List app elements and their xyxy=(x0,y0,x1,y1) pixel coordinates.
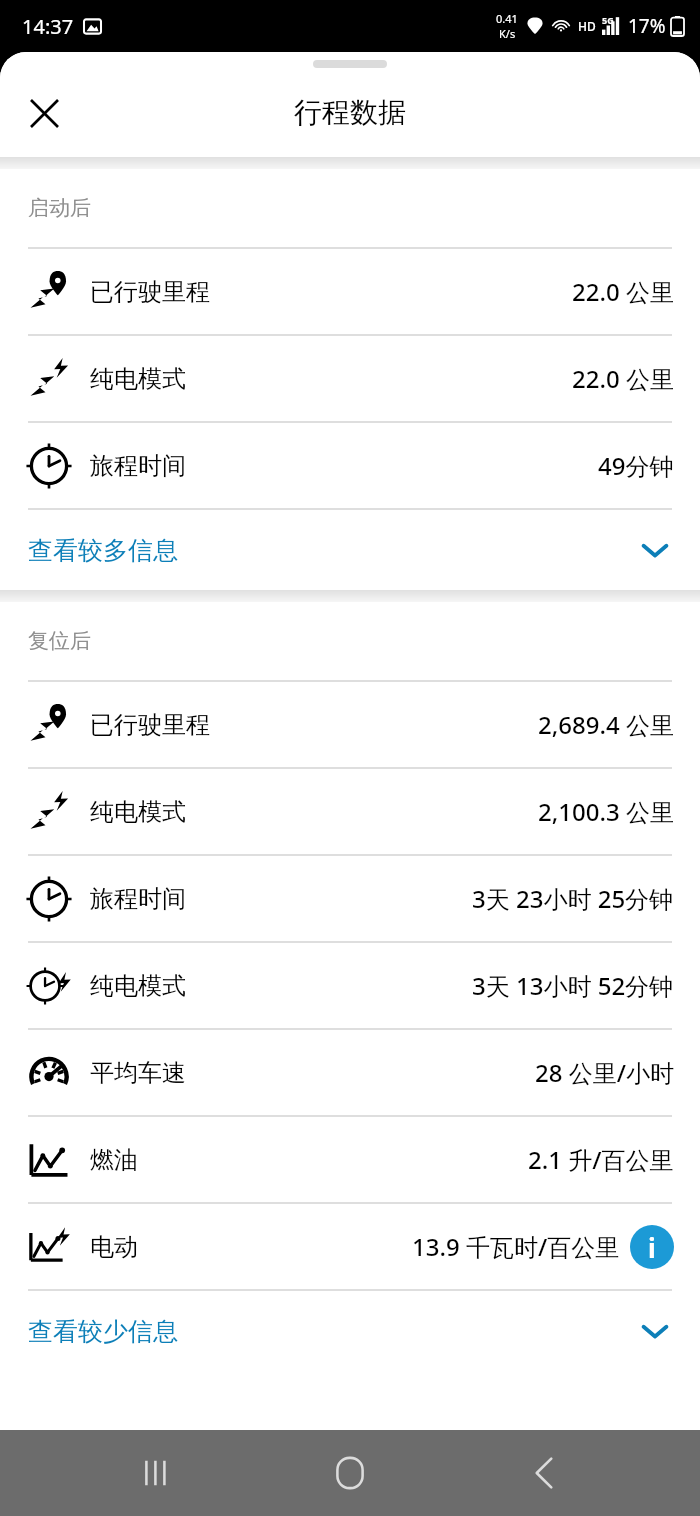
button[interactable]: Back xyxy=(506,1435,582,1511)
button[interactable]: 已行驶里程 xyxy=(0,249,700,334)
staticText: 旅程时间 xyxy=(90,451,186,481)
staticText: 纯电模式 xyxy=(90,971,186,1001)
button[interactable]: 查看较多信息 xyxy=(0,510,700,590)
staticText: HD xyxy=(578,18,596,34)
button[interactable]: 纯电模式 xyxy=(0,943,700,1028)
staticText: 查看较少信息 xyxy=(28,1316,178,1347)
staticText: 平均车速 xyxy=(90,1058,186,1088)
staticText: K/s xyxy=(499,26,516,41)
button[interactable]: Info xyxy=(630,1225,674,1269)
staticText: 复位后 xyxy=(28,628,91,654)
staticText: 启动后 xyxy=(28,195,91,221)
staticText: 2,100.3 公里 xyxy=(538,795,674,828)
staticText: 22.0 公里 xyxy=(572,362,674,395)
staticText: 纯电模式 xyxy=(90,364,186,394)
button[interactable]: Home xyxy=(312,1435,388,1511)
staticText: 5G xyxy=(602,14,614,26)
button[interactable]: 燃油 xyxy=(0,1117,700,1202)
button[interactable]: 旅程时间 xyxy=(0,856,700,941)
staticText: 已行驶里程 xyxy=(90,277,210,307)
button[interactable]: 电动 xyxy=(0,1204,700,1289)
staticText: 纯电模式 xyxy=(90,797,186,827)
staticText: 查看较多信息 xyxy=(28,535,178,566)
button[interactable]: 纯电模式 xyxy=(0,336,700,421)
staticText: 2,689.4 公里 xyxy=(538,708,674,741)
staticText: 28 公里/小时 xyxy=(535,1056,674,1089)
staticText: 0.41 xyxy=(496,11,518,26)
button[interactable]: 已行驶里程 xyxy=(0,682,700,767)
staticText: 已行驶里程 xyxy=(90,710,210,740)
staticText: 行程数据 xyxy=(294,95,406,130)
staticText: 电动 xyxy=(90,1232,138,1262)
button[interactable]: Close xyxy=(18,87,70,139)
staticText: 旅程时间 xyxy=(90,884,186,914)
staticText: 燃油 xyxy=(90,1145,138,1175)
staticText: 14:37 xyxy=(22,13,74,40)
staticText: 3天 23小时 25分钟 xyxy=(472,882,674,915)
button[interactable]: 查看较少信息 xyxy=(0,1291,700,1371)
staticText: 17% xyxy=(628,13,666,39)
staticText: i xyxy=(648,1230,656,1265)
staticText: 49分钟 xyxy=(598,449,674,482)
staticText: 2.1 升/百公里 xyxy=(528,1143,674,1176)
button[interactable]: 纯电模式 xyxy=(0,769,700,854)
button[interactable]: Recents xyxy=(118,1435,194,1511)
button[interactable]: 平均车速 xyxy=(0,1030,700,1115)
staticText: 3天 13小时 52分钟 xyxy=(472,969,674,1002)
staticText: 22.0 公里 xyxy=(572,275,674,308)
staticText: 13.9 千瓦时/百公里 xyxy=(412,1230,620,1263)
button[interactable]: 旅程时间 xyxy=(0,423,700,508)
